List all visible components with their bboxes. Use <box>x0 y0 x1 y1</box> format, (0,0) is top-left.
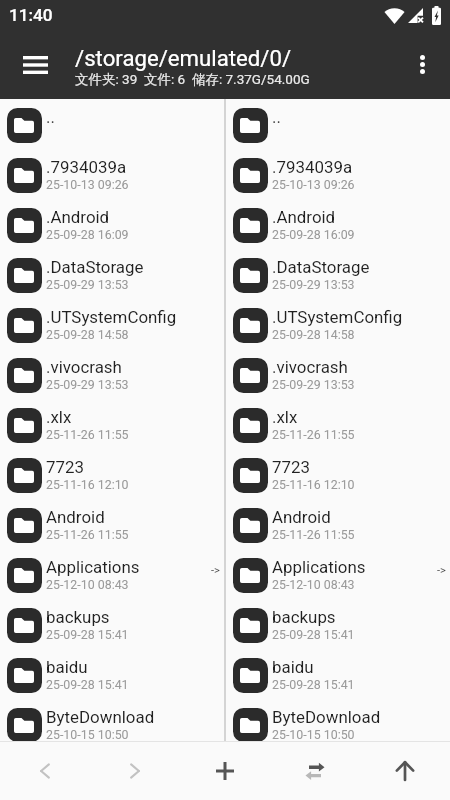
button[interactable]: Applications <box>226 557 450 607</box>
staticText: 25-09-28 16:09 <box>46 227 129 242</box>
staticText: 25-11-16 12:10 <box>46 477 129 492</box>
staticText: 7723 <box>46 457 84 477</box>
button[interactable]: .UTSystemConfig <box>0 307 224 357</box>
staticText: .UTSystemConfig <box>272 307 403 327</box>
staticText: 25-09-29 13:53 <box>46 377 129 392</box>
staticText: .Android <box>272 207 336 227</box>
staticText: /storage/emulated/0/ <box>75 45 292 71</box>
staticText: backups <box>46 607 110 627</box>
staticText: .7934039a <box>272 157 353 177</box>
button[interactable]: .xlx <box>0 407 224 457</box>
staticText: 25-09-28 15:41 <box>272 627 355 642</box>
staticText: 25-11-26 11:55 <box>272 527 355 542</box>
staticText: 25-12-10 08:43 <box>46 577 129 592</box>
staticText: 25-09-28 14:58 <box>272 327 355 342</box>
button[interactable]: Android <box>226 507 450 557</box>
staticText: .7934039a <box>46 157 127 177</box>
staticText: 11:40 <box>9 5 53 25</box>
button[interactable]: 7723 <box>0 457 224 507</box>
staticText: 25-09-28 15:41 <box>46 627 129 642</box>
button[interactable]: .Android <box>226 207 450 257</box>
button[interactable]: .vivocrash <box>226 357 450 407</box>
button[interactable]: .7934039a <box>226 157 450 207</box>
staticText: 文件夹: 39 文件: 6 储存: 7.37G/54.00G <box>75 71 310 88</box>
button[interactable]: .vivocrash <box>0 357 224 407</box>
staticText: 25-11-16 12:10 <box>272 477 355 492</box>
staticText: 25-11-26 11:55 <box>46 427 129 442</box>
staticText: .Android <box>46 207 110 227</box>
staticText: 25-09-29 13:53 <box>272 377 355 392</box>
button[interactable]: ByteDownload <box>226 707 450 741</box>
button[interactable]: Back <box>0 742 90 800</box>
staticText: -> <box>211 564 220 577</box>
staticText: 25-09-28 15:41 <box>272 677 355 692</box>
button[interactable]: More options <box>394 30 450 99</box>
staticText: Android <box>272 507 331 527</box>
staticText: .. <box>46 107 55 127</box>
staticText: 25-09-29 13:53 <box>46 277 129 292</box>
staticText: -> <box>437 564 446 577</box>
staticText: 25-10-15 10:50 <box>272 727 355 741</box>
button[interactable]: .Android <box>0 207 224 257</box>
staticText: 25-10-13 09:26 <box>46 177 129 192</box>
button[interactable]: 7723 <box>226 457 450 507</box>
button[interactable]: New <box>180 742 270 800</box>
button[interactable]: Applications <box>0 557 224 607</box>
staticText: 25-09-28 16:09 <box>272 227 355 242</box>
button[interactable]: Forward <box>90 742 180 800</box>
staticText: baidu <box>272 657 314 677</box>
staticText: 7723 <box>272 457 310 477</box>
button[interactable]: .UTSystemConfig <box>226 307 450 357</box>
staticText: 25-11-26 11:55 <box>46 527 129 542</box>
staticText: 25-09-28 14:58 <box>46 327 129 342</box>
staticText: .xlx <box>272 407 298 427</box>
staticText: .vivocrash <box>272 357 348 377</box>
button[interactable]: Up <box>360 742 450 800</box>
button[interactable]: backups <box>226 607 450 657</box>
staticText: ByteDownload <box>272 707 381 727</box>
staticText: 25-11-26 11:55 <box>272 427 355 442</box>
button[interactable]: baidu <box>0 657 224 707</box>
staticText: 25-12-10 08:43 <box>272 577 355 592</box>
button[interactable]: .DataStorage <box>226 257 450 307</box>
staticText: .xlx <box>46 407 72 427</box>
button[interactable]: .7934039a <box>0 157 224 207</box>
staticText: .vivocrash <box>46 357 122 377</box>
staticText: .UTSystemConfig <box>46 307 177 327</box>
button[interactable]: backups <box>0 607 224 657</box>
button[interactable]: .. <box>0 107 224 157</box>
staticText: Android <box>46 507 105 527</box>
staticText: 25-10-13 09:26 <box>272 177 355 192</box>
button[interactable]: .xlx <box>226 407 450 457</box>
button[interactable]: .DataStorage <box>0 257 224 307</box>
staticText: ByteDownload <box>46 707 155 727</box>
staticText: baidu <box>46 657 88 677</box>
staticText: .. <box>272 107 281 127</box>
staticText: Applications <box>46 557 140 577</box>
staticText: 25-09-29 13:53 <box>272 277 355 292</box>
button[interactable]: baidu <box>226 657 450 707</box>
staticText: backups <box>272 607 336 627</box>
button[interactable]: Android <box>0 507 224 557</box>
staticText: Applications <box>272 557 366 577</box>
staticText: 25-10-15 10:50 <box>46 727 129 741</box>
button[interactable]: Swap panels <box>270 742 360 800</box>
staticText: 25-09-28 15:41 <box>46 677 129 692</box>
staticText: .DataStorage <box>46 257 144 277</box>
button[interactable]: Menu <box>0 30 70 99</box>
staticText: .DataStorage <box>272 257 370 277</box>
button[interactable]: .. <box>226 107 450 157</box>
button[interactable]: ByteDownload <box>0 707 224 741</box>
